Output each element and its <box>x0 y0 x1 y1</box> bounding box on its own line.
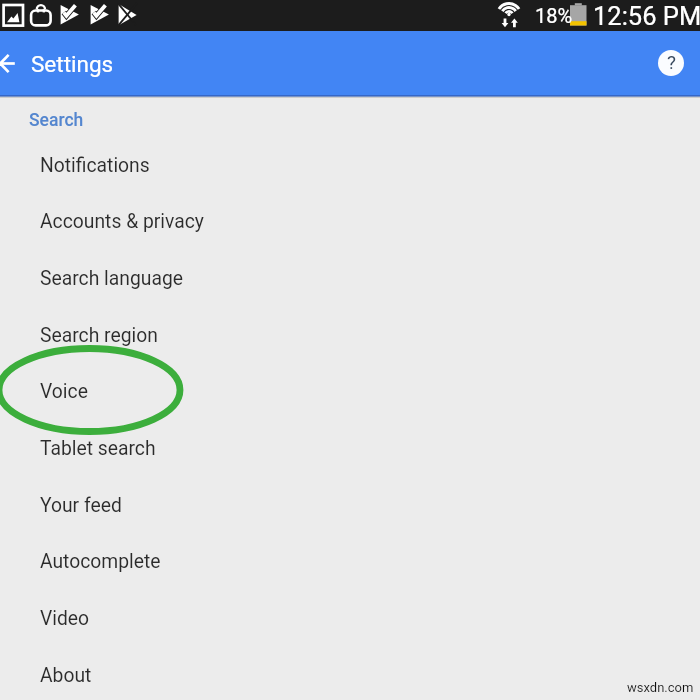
button[interactable]: Accounts & privacy <box>0 193 700 249</box>
staticText: Search language <box>40 267 183 290</box>
staticText: Autocomplete <box>40 550 161 573</box>
staticText: Search region <box>40 324 158 347</box>
button[interactable]: Your feed <box>0 477 700 533</box>
button[interactable]: Search region <box>0 307 700 363</box>
staticText: ? <box>667 51 676 73</box>
button[interactable]: Help <box>654 47 688 81</box>
staticText: Your feed <box>40 494 122 517</box>
button[interactable]: Notifications <box>0 137 700 193</box>
staticText: Video <box>40 607 90 630</box>
button[interactable]: Tablet search <box>0 420 700 476</box>
button[interactable]: Autocomplete <box>0 533 700 589</box>
staticText: Accounts & privacy <box>40 210 204 233</box>
button[interactable]: Back <box>0 44 28 84</box>
button[interactable]: Voice <box>0 363 700 419</box>
staticText: Notifications <box>40 154 150 177</box>
staticText: Search <box>29 110 84 131</box>
staticText: Voice <box>40 380 88 403</box>
staticText: About <box>40 664 92 687</box>
button[interactable]: Search language <box>0 250 700 306</box>
staticText: wsxdn.com <box>627 680 694 695</box>
button[interactable]: About <box>0 647 700 700</box>
staticText: Settings <box>31 51 114 77</box>
staticText: Tablet search <box>40 437 156 460</box>
staticText: 12:56 PM <box>593 1 700 31</box>
button[interactable]: Video <box>0 590 700 646</box>
staticText: 18% <box>535 4 573 27</box>
